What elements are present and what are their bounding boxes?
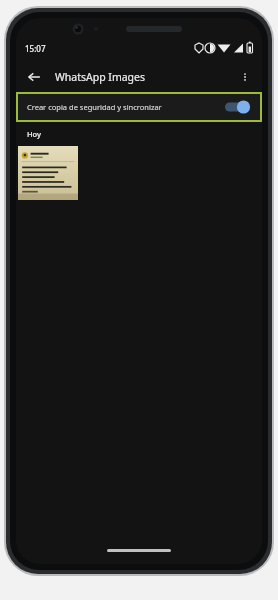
staticText: Crear copia de seguridad y sincronizar (27, 102, 162, 112)
button[interactable]: Back (23, 66, 45, 88)
staticText: WhatsApp Images (55, 70, 145, 84)
button[interactable]: More options (234, 66, 256, 88)
staticText: 15:07 (25, 43, 46, 54)
staticText: Hoy (27, 129, 42, 139)
button[interactable]: Crear copia de seguridad y sincronizar (16, 92, 262, 122)
button[interactable]: Photo (18, 146, 78, 200)
button[interactable]: Backup and sync toggle (223, 99, 251, 115)
